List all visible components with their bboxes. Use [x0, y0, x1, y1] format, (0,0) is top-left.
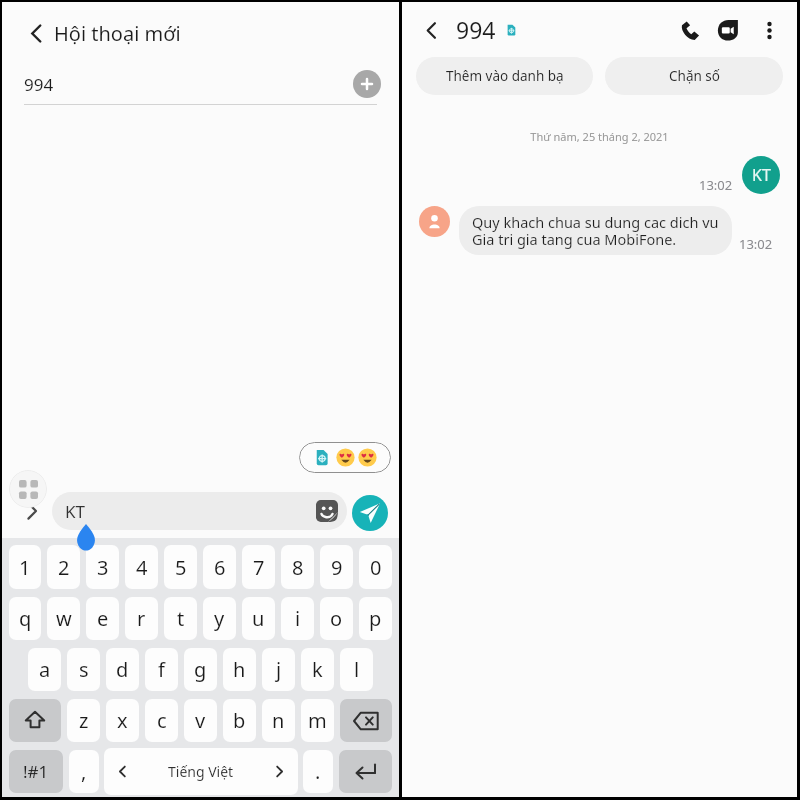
staticText: 7 — [253, 554, 265, 581]
button[interactable]: Message input — [52, 492, 347, 530]
staticText: n — [272, 707, 285, 734]
staticText: m — [308, 707, 327, 734]
staticText: q — [19, 605, 32, 632]
button[interactable]: h — [223, 648, 256, 691]
button[interactable]: , — [69, 750, 99, 793]
button[interactable]: e — [86, 597, 119, 640]
button[interactable]: Thêm vào danh bạ — [416, 57, 593, 95]
button[interactable]: Call — [665, 9, 707, 51]
staticText: g — [194, 656, 207, 683]
staticText: t — [177, 605, 185, 632]
staticText: e — [97, 605, 109, 632]
button[interactable]: y — [203, 597, 236, 640]
button[interactable]: Space — [104, 748, 298, 795]
button[interactable]: f — [145, 648, 178, 691]
staticText: Quy khach chua su dung cac dich vu Gia t… — [472, 212, 719, 249]
staticText: f — [158, 656, 165, 683]
staticText: k — [312, 656, 323, 683]
staticText: z — [79, 707, 89, 734]
staticText: o — [330, 605, 343, 632]
button[interactable]: Video call — [707, 9, 749, 51]
button[interactable]: Enter — [339, 750, 392, 793]
button[interactable]: d — [106, 648, 139, 691]
button[interactable]: 3 — [86, 545, 119, 589]
staticText: b — [233, 707, 246, 734]
staticText: d — [116, 656, 129, 683]
staticText: a — [39, 656, 51, 683]
button[interactable]: 0 — [359, 545, 392, 589]
staticText: 994 — [24, 73, 54, 96]
staticText: 0 — [370, 554, 382, 581]
button[interactable]: p — [359, 597, 392, 640]
button[interactable]: s — [67, 648, 100, 691]
button[interactable]: 5 — [164, 545, 197, 589]
button[interactable]: b — [223, 699, 256, 742]
button[interactable]: t — [164, 597, 197, 640]
button[interactable]: Shift — [9, 699, 61, 742]
staticText: u — [252, 605, 265, 632]
staticText: 3 — [97, 554, 109, 581]
button[interactable]: a — [28, 648, 61, 691]
button[interactable]: Back — [411, 10, 451, 50]
staticText: i — [295, 605, 301, 632]
staticText: c — [157, 707, 167, 734]
staticText: j — [276, 656, 282, 683]
staticText: 6 — [214, 554, 226, 581]
staticText: Chặn số — [669, 67, 720, 85]
button[interactable]: z — [67, 699, 100, 742]
button[interactable]: w — [47, 597, 80, 640]
staticText: . — [315, 758, 321, 785]
button[interactable]: 1 — [9, 545, 41, 589]
button[interactable]: Suggestions — [299, 442, 391, 473]
button[interactable]: Back — [14, 11, 58, 55]
button[interactable]: More options — [749, 10, 789, 50]
button[interactable]: Send — [352, 495, 388, 531]
staticText: 5 — [175, 554, 187, 581]
staticText: v — [195, 707, 206, 734]
button[interactable]: 9 — [320, 545, 353, 589]
button[interactable]: m — [301, 699, 334, 742]
button[interactable]: 6 — [203, 545, 236, 589]
staticText: Thứ năm, 25 tháng 2, 2021 — [402, 129, 797, 144]
button[interactable]: Expand — [18, 497, 46, 525]
staticText: 8 — [292, 554, 304, 581]
button[interactable]: v — [184, 699, 217, 742]
button[interactable]: u — [242, 597, 275, 640]
staticText: w — [56, 605, 72, 632]
button[interactable]: 2 — [47, 545, 80, 589]
staticText: 4 — [136, 554, 148, 581]
staticText: 2 — [58, 554, 70, 581]
button[interactable]: Add recipient — [353, 70, 381, 98]
button[interactable]: 4 — [125, 545, 158, 589]
staticText: 13:02 — [699, 176, 733, 194]
staticText: Thêm vào danh bạ — [446, 67, 564, 85]
button[interactable]: x — [106, 699, 139, 742]
staticText: r — [137, 605, 146, 632]
staticText: p — [369, 605, 382, 632]
button[interactable]: j — [262, 648, 295, 691]
staticText: , — [81, 758, 87, 785]
button[interactable]: o — [320, 597, 353, 640]
staticText: s — [79, 656, 89, 683]
button[interactable]: q — [9, 597, 41, 640]
button[interactable]: k — [301, 648, 334, 691]
staticText: KT — [65, 500, 85, 523]
button[interactable]: . — [303, 750, 333, 793]
staticText: Hội thoại mới — [54, 20, 181, 47]
button[interactable]: n — [262, 699, 295, 742]
staticText: l — [354, 656, 360, 683]
button[interactable]: 7 — [242, 545, 275, 589]
button[interactable]: Chặn số — [605, 57, 783, 95]
button[interactable]: 8 — [281, 545, 314, 589]
button[interactable]: c — [145, 699, 178, 742]
button[interactable]: i — [281, 597, 314, 640]
button[interactable]: Symbols — [9, 750, 63, 793]
button[interactable]: g — [184, 648, 217, 691]
button[interactable]: Backspace — [340, 699, 392, 742]
button[interactable]: r — [125, 597, 158, 640]
staticText: y — [214, 605, 225, 632]
staticText: 994 — [456, 14, 496, 45]
button[interactable]: Apps — [9, 470, 47, 508]
button[interactable]: l — [340, 648, 373, 691]
staticText: h — [233, 656, 246, 683]
